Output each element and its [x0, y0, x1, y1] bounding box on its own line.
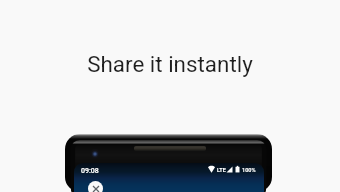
- staticText: Share it instantly: [0, 51, 340, 77]
- staticText: 100%: [242, 167, 256, 173]
- button[interactable]: Close: [88, 181, 103, 192]
- staticText: 09:08: [81, 167, 99, 175]
- staticText: LTE: [217, 167, 226, 173]
